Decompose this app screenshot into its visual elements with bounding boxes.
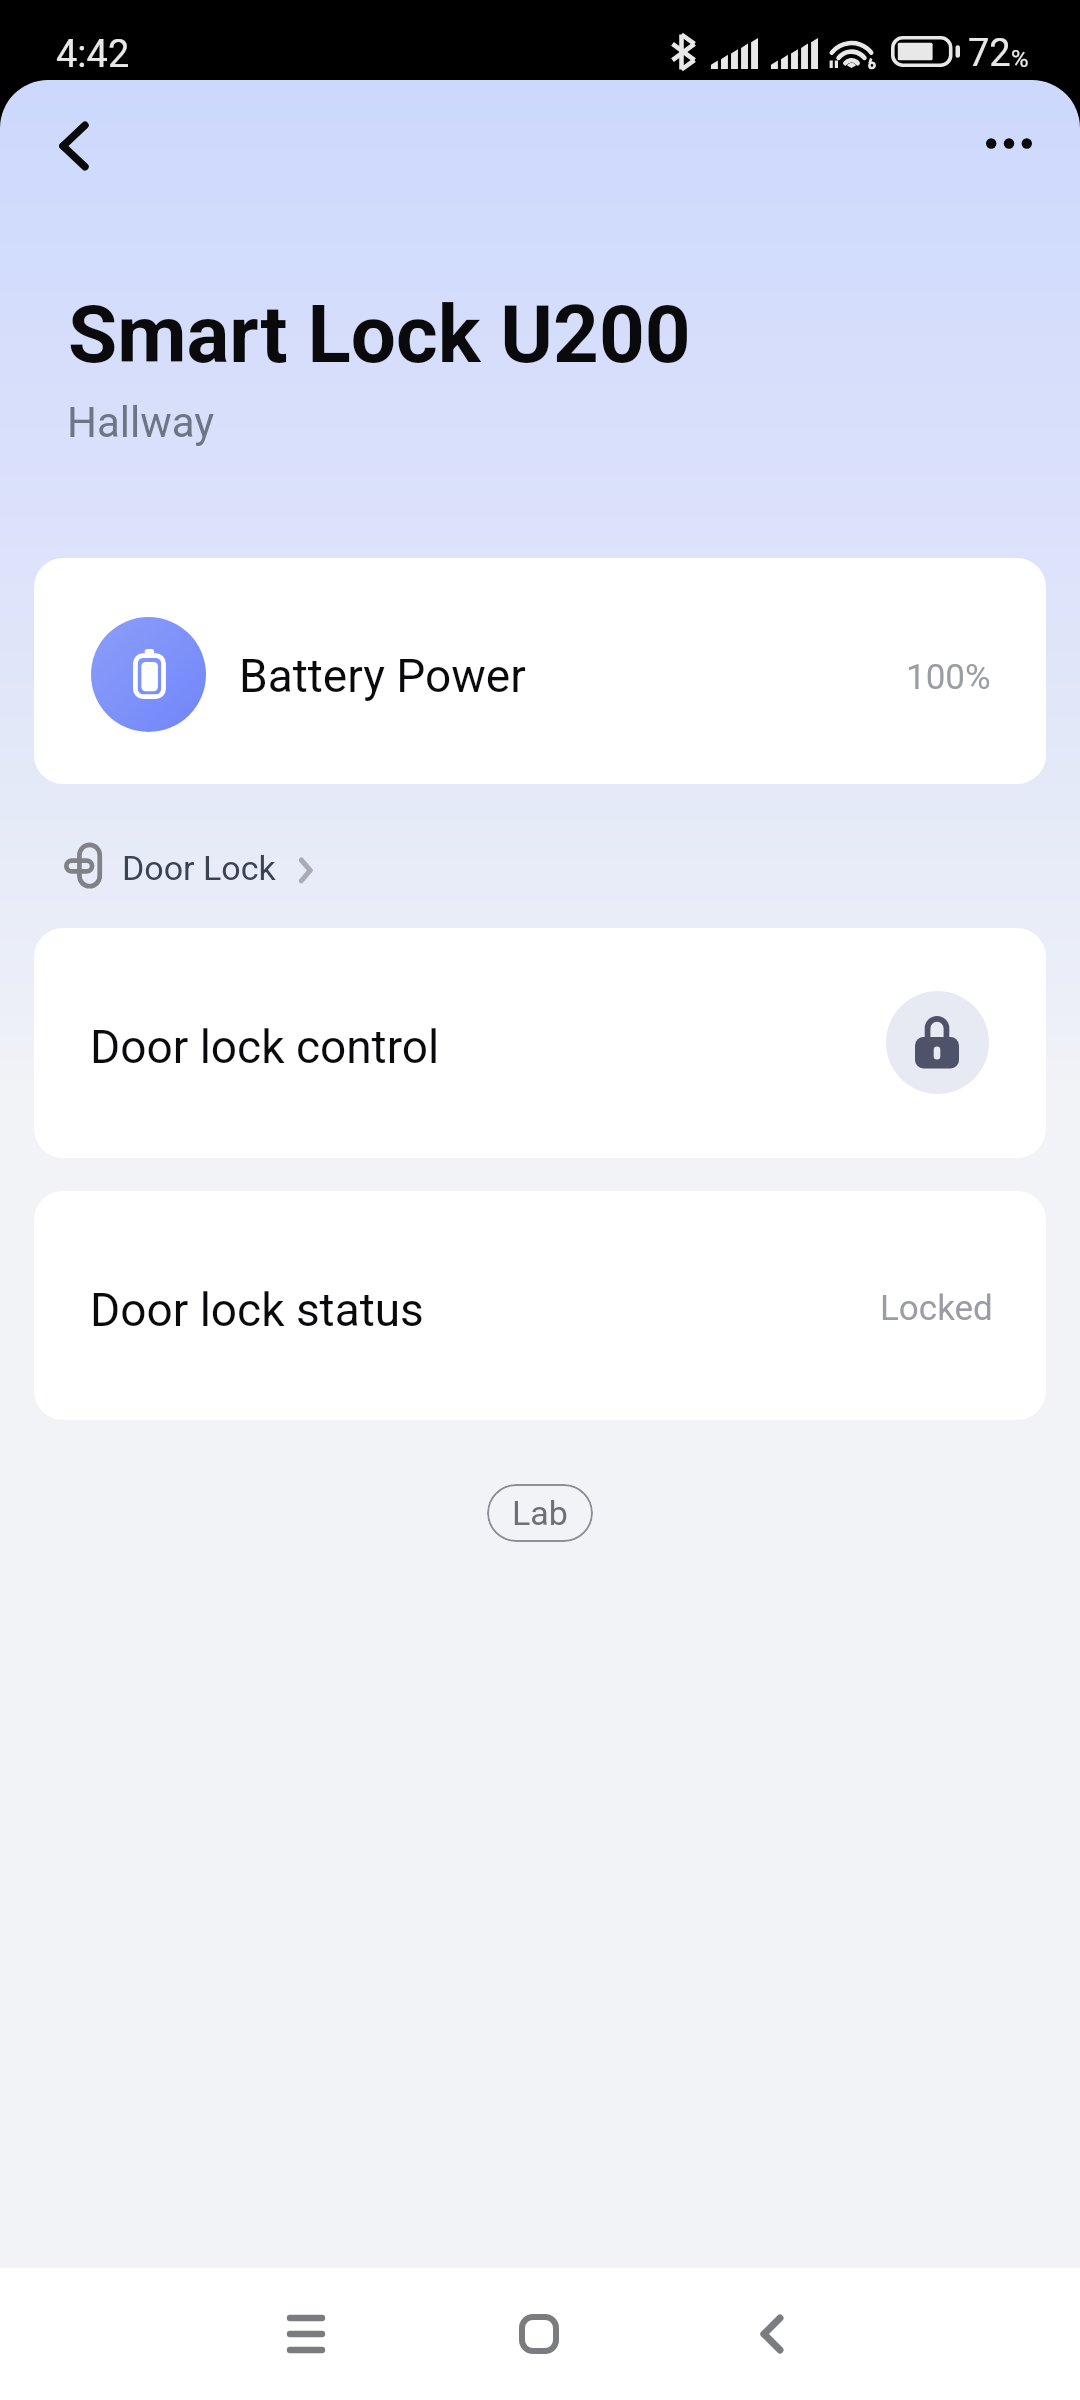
staticText: Battery Power [239,649,526,703]
staticText: % [1011,45,1029,73]
button[interactable]: Door Lock [50,830,330,914]
staticText: Hallway [67,398,215,447]
staticText: Lab [512,1493,568,1533]
button[interactable]: Home [479,2274,599,2394]
button[interactable]: Battery Power [34,558,1046,784]
staticText: Door lock status [90,1283,424,1337]
staticText: Door lock control [90,1020,440,1074]
staticText: 4:42 [56,32,130,77]
staticText: Locked [880,1288,993,1329]
button[interactable]: More options [965,99,1053,187]
staticText: 100% [906,657,991,698]
button[interactable]: Door lock status [34,1191,1046,1420]
staticText: Door Lock [122,848,276,888]
button[interactable]: Lock [886,991,989,1094]
button[interactable]: Lab [487,1484,593,1542]
staticText: 72 [968,31,1011,76]
staticText: Smart Lock U200 [68,288,691,382]
button[interactable]: Back [712,2274,832,2394]
button[interactable]: Back [30,102,118,190]
button[interactable]: Door lock control [34,928,1046,1158]
button[interactable]: Recents [246,2274,366,2394]
